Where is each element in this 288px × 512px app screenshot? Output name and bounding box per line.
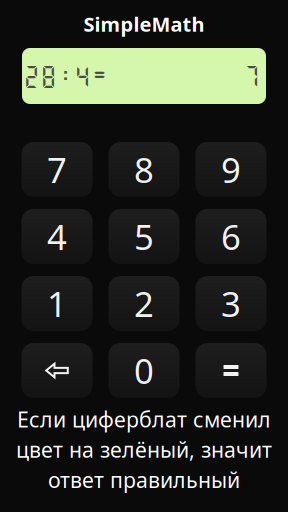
staticText: 9 <box>221 146 241 192</box>
button[interactable]: Delete <box>21 343 92 398</box>
button[interactable]: 5 <box>108 209 179 264</box>
staticText: 7 <box>47 146 67 192</box>
staticText: Если циферблат сменил <box>17 405 271 433</box>
button[interactable]: 2 <box>108 276 179 331</box>
staticText: цвет на зелёный, значит <box>16 435 272 464</box>
staticText: 28:4= <box>23 62 108 90</box>
staticText: SimpleMath <box>83 11 204 37</box>
button[interactable]: 0 <box>108 343 179 398</box>
button[interactable]: 7 <box>21 142 92 197</box>
staticText: 7 <box>243 62 260 90</box>
staticText: 3 <box>221 280 241 326</box>
staticText: 5 <box>134 213 154 259</box>
button[interactable]: 4 <box>21 209 92 264</box>
staticText: 6 <box>221 213 241 259</box>
staticText: 1 <box>47 280 67 326</box>
staticText: 2 <box>134 280 154 326</box>
button[interactable]: 6 <box>195 209 266 264</box>
staticText: 4 <box>47 213 67 259</box>
staticText: 0 <box>134 347 154 393</box>
button[interactable]: 3 <box>195 276 266 331</box>
button[interactable]: 1 <box>21 276 92 331</box>
button[interactable]: 8 <box>108 142 179 197</box>
staticText: ответ правильный <box>48 466 240 494</box>
button[interactable]: 9 <box>195 142 266 197</box>
staticText: 8 <box>134 146 154 192</box>
button[interactable]: Equals <box>195 343 266 398</box>
